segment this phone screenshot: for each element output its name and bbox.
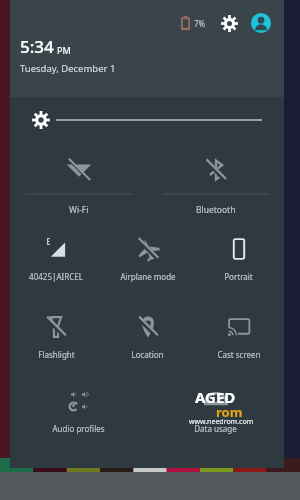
button[interactable]: Settings xyxy=(218,12,240,34)
staticText: www.needrom.com xyxy=(189,417,254,427)
staticText: Flashlight xyxy=(38,349,75,360)
button[interactable]: Bluetooth xyxy=(147,142,284,216)
button[interactable]: Airplane mode xyxy=(102,224,193,282)
staticText: Airplane mode xyxy=(120,271,176,282)
staticText: Bluetooth xyxy=(196,204,236,216)
staticText: Portrait xyxy=(224,271,253,282)
staticText: rom xyxy=(216,403,243,421)
button[interactable]: Wi-Fi xyxy=(10,142,147,216)
button[interactable]: Audio profiles xyxy=(10,376,147,434)
staticText: Wi-Fi xyxy=(69,204,89,216)
staticText: AGED xyxy=(195,387,236,407)
staticText: PM xyxy=(57,44,71,56)
staticText: Audio profiles xyxy=(52,423,105,434)
staticText: Data usage xyxy=(194,423,237,434)
button[interactable]: Flashlight xyxy=(10,302,102,360)
button[interactable]: Portrait xyxy=(193,224,284,282)
button[interactable]: 40425|AIRCEL xyxy=(10,224,102,282)
button[interactable]: Brightness xyxy=(10,97,284,142)
staticText: Tuesday, December 1 xyxy=(20,62,116,75)
staticText: 5:34 xyxy=(20,35,54,58)
button[interactable]: Cast screen xyxy=(193,302,284,360)
button[interactable]: User profile xyxy=(250,12,272,34)
button[interactable]: Data usage xyxy=(147,376,284,448)
staticText: Location xyxy=(131,349,164,360)
staticText: 7% xyxy=(194,18,206,29)
button[interactable]: Location xyxy=(102,302,193,360)
staticText: Cast screen xyxy=(217,349,261,360)
staticText: 40425|AIRCEL xyxy=(29,271,83,282)
